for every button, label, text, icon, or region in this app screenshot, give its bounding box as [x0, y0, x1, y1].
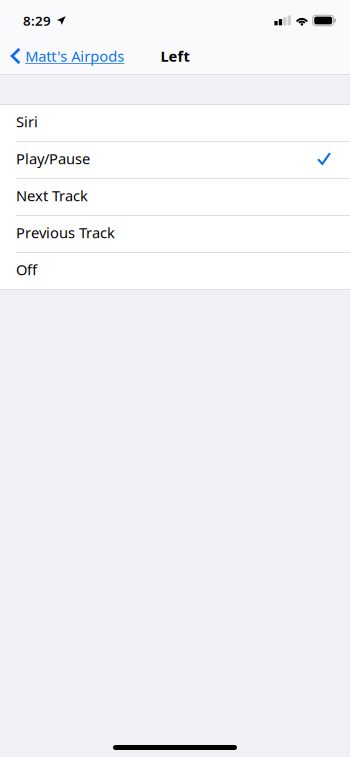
- staticText: Play/Pause: [16, 149, 90, 168]
- staticText: Next Track: [16, 186, 88, 205]
- staticText: 8:29: [23, 12, 51, 29]
- staticText: Off: [16, 260, 37, 279]
- button[interactable]: Play/Pause: [0, 142, 350, 178]
- staticText: Matt's Airpods: [25, 46, 124, 66]
- staticText: Left: [160, 46, 189, 66]
- staticText: Previous Track: [16, 223, 115, 242]
- staticText: Siri: [16, 112, 38, 131]
- button[interactable]: Matt's Airpods: [0, 38, 132, 74]
- button[interactable]: Off: [0, 253, 350, 289]
- button[interactable]: Previous Track: [0, 216, 350, 252]
- button[interactable]: Siri: [0, 105, 350, 141]
- button[interactable]: Next Track: [0, 179, 350, 215]
